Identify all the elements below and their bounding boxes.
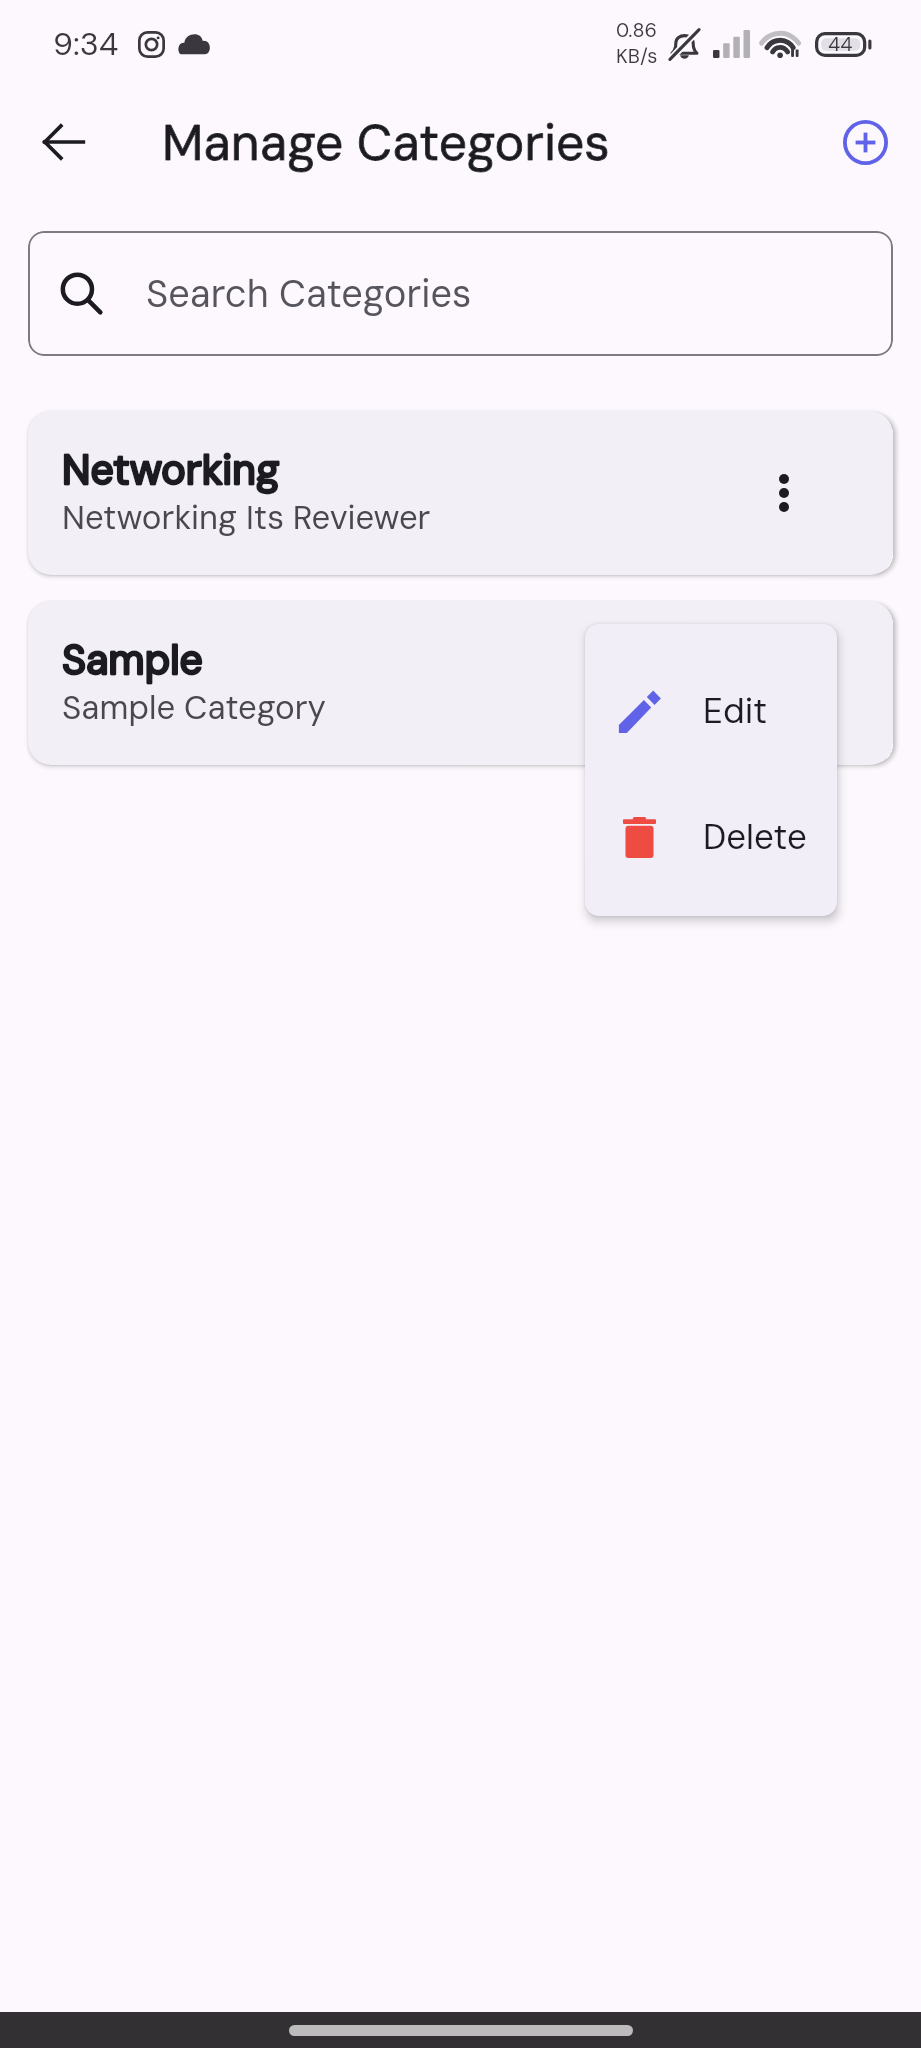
staticText: KB/s <box>616 43 658 69</box>
staticText: Manage Categories <box>162 110 610 175</box>
staticText: Networking <box>62 443 280 496</box>
staticText: Sample <box>62 633 203 686</box>
staticText: Sample <box>62 633 203 686</box>
button[interactable]: More options <box>755 464 813 522</box>
button[interactable]: Sample <box>28 601 893 765</box>
button[interactable]: More options <box>755 654 813 712</box>
staticText: 44 <box>828 31 853 57</box>
staticText: Networking <box>62 443 280 496</box>
button[interactable]: Add category <box>836 113 894 171</box>
button[interactable]: Delete <box>585 774 837 900</box>
staticText: Sample Category <box>62 686 326 729</box>
staticText: Search Categories <box>146 269 472 318</box>
button[interactable]: Search Categories <box>28 231 893 356</box>
staticText: Edit <box>703 688 768 734</box>
button[interactable]: Back <box>35 113 93 171</box>
button[interactable]: Edit <box>585 648 837 774</box>
staticText: 0.86 <box>616 17 658 43</box>
button[interactable]: Networking <box>28 411 893 575</box>
staticText: Delete <box>703 814 807 860</box>
staticText: 9:34 <box>53 23 119 65</box>
staticText: Manage Categories <box>162 110 610 175</box>
staticText: Networking Its Reviewer <box>62 496 431 539</box>
